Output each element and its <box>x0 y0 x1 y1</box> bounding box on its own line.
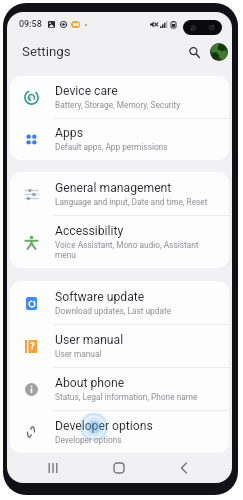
staticText: Developer options <box>55 435 122 445</box>
button[interactable]: General management <box>10 172 229 215</box>
staticText: Settings <box>22 44 71 60</box>
button[interactable]: Software update <box>10 281 229 324</box>
staticText: MS <box>73 22 79 27</box>
staticText: General management <box>55 181 172 195</box>
staticText: Software update <box>55 290 145 304</box>
staticText: Download updates, Last update <box>55 306 172 316</box>
staticText: 09:58 <box>19 19 42 30</box>
button[interactable]: ? <box>10 324 229 367</box>
staticText: User manual <box>55 333 124 347</box>
button[interactable]: Account <box>210 43 228 61</box>
staticText: Device care <box>55 84 118 98</box>
staticText: Default apps, App permissions <box>55 142 168 152</box>
button[interactable]: Apps <box>10 118 229 160</box>
staticText: About phone <box>55 376 125 390</box>
staticText: Language and input, Date and time, Reset <box>55 197 208 207</box>
staticText: Accessibility <box>55 224 124 238</box>
staticText: Status, Legal information, Phone name <box>55 392 198 402</box>
button[interactable]: Home <box>104 453 134 483</box>
button[interactable]: Developer options <box>10 410 229 453</box>
staticText: User manual <box>55 349 102 359</box>
button[interactable]: Back <box>169 453 199 483</box>
staticText: ? <box>30 341 35 352</box>
button[interactable]: Search <box>184 42 204 62</box>
staticText: Voice Assistant, Mono audio, Assistant m… <box>55 240 217 260</box>
button[interactable]: Recent apps <box>38 453 68 483</box>
button[interactable]: Accessibility <box>10 215 229 268</box>
staticText: Apps <box>55 126 83 140</box>
button[interactable]: About phone <box>10 367 229 410</box>
staticText: Developer options <box>55 419 153 433</box>
button[interactable]: Device care <box>10 76 229 118</box>
staticText: Battery, Storage, Memory, Security <box>55 100 181 110</box>
